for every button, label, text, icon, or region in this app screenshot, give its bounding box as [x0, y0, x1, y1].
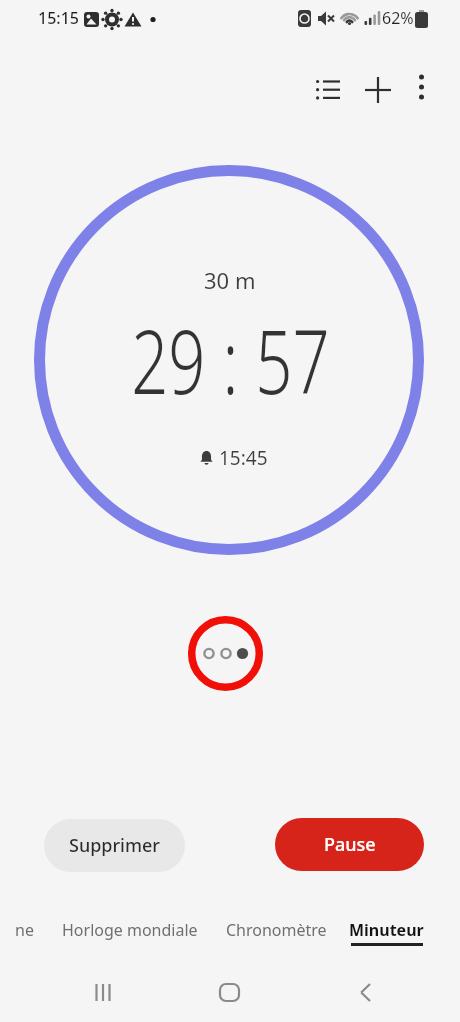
button[interactable]: Supprimer: [44, 819, 185, 872]
button[interactable]: [205, 968, 253, 1016]
button[interactable]: Minuteur: [349, 919, 424, 946]
button[interactable]: Pause: [275, 818, 424, 871]
staticText: 62%: [382, 7, 414, 29]
staticText: 30 m: [204, 265, 256, 295]
button[interactable]: [341, 968, 389, 1016]
staticText: Minuteur: [349, 919, 424, 941]
button[interactable]: Horloge mondiale: [62, 919, 198, 941]
staticText: Supprimer: [69, 833, 160, 858]
staticText: 15:15: [38, 7, 79, 29]
button[interactable]: [354, 66, 402, 114]
button[interactable]: [400, 66, 442, 108]
button[interactable]: Chronomètre: [226, 919, 327, 941]
button[interactable]: ne: [15, 919, 34, 941]
staticText: 15:45: [219, 445, 268, 471]
button[interactable]: [304, 66, 352, 114]
button[interactable]: [79, 968, 127, 1016]
staticText: 29 : 57: [131, 300, 330, 420]
staticText: Pause: [324, 832, 376, 857]
